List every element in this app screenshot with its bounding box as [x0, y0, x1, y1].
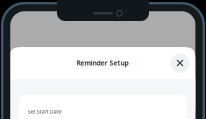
staticText: Reminder Setup: [76, 59, 128, 67]
button[interactable]: Set Start Date: [19, 95, 187, 119]
button[interactable]: Close: [170, 53, 189, 72]
staticText: Set Start Date: [27, 108, 61, 115]
